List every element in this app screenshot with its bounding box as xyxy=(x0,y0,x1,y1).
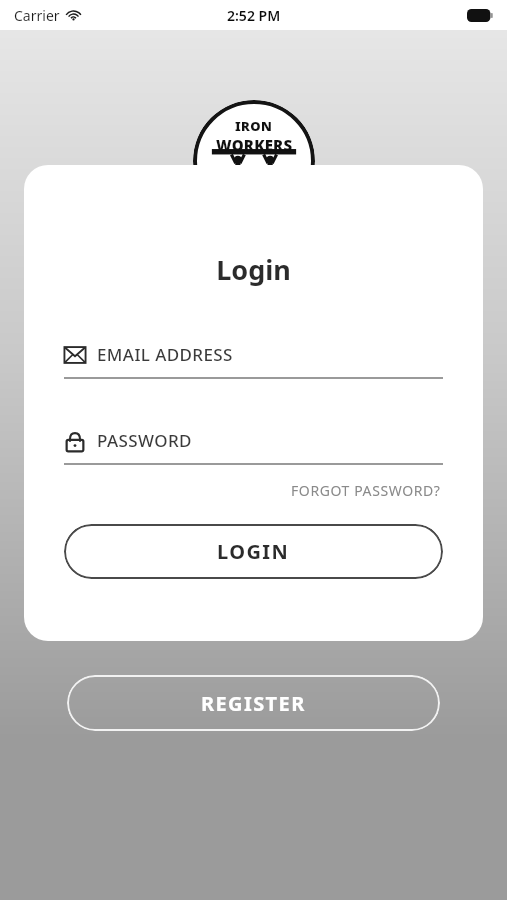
staticText: REGISTER xyxy=(201,690,306,717)
other: Email xyxy=(64,344,86,366)
staticText: Carrier xyxy=(14,6,60,25)
staticText: IRON xyxy=(235,117,273,135)
other: Password xyxy=(64,430,86,452)
staticText: LOGIN xyxy=(217,538,290,565)
button[interactable]: FORGOT PASSWORD? xyxy=(289,477,443,504)
staticText: FORGOT PASSWORD? xyxy=(291,481,441,500)
button[interactable]: REGISTER xyxy=(67,675,440,731)
staticText: Login xyxy=(24,251,483,288)
staticText: 2:52 PM xyxy=(227,6,281,25)
button[interactable]: Email xyxy=(64,343,443,379)
staticText: WORKERS xyxy=(216,135,293,155)
button[interactable]: LOGIN xyxy=(64,524,443,579)
staticText: PASSWORD xyxy=(97,429,192,452)
staticText: EMAIL ADDRESS xyxy=(97,343,233,366)
button[interactable]: Password xyxy=(64,429,443,465)
